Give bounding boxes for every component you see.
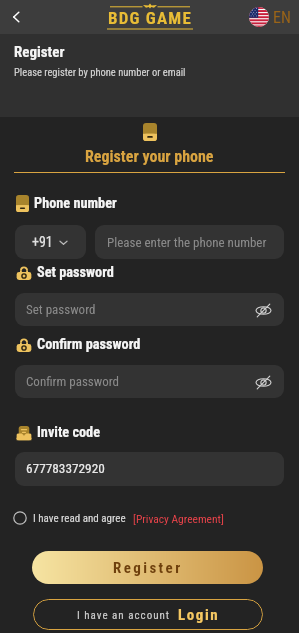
button[interactable]: I have an account (33, 599, 263, 630)
button[interactable]: I have read and agree (13, 509, 299, 527)
staticText: Confirm password (26, 374, 120, 389)
button[interactable]: +91 (15, 225, 86, 259)
button[interactable]: Show password (252, 371, 274, 393)
staticText: Register your phone (85, 147, 214, 166)
staticText: BDG GAME (108, 8, 192, 28)
staticText: 677783372920 (26, 461, 105, 477)
button[interactable]: Set password (15, 293, 284, 326)
staticText: Please enter the phone number (107, 235, 267, 250)
button[interactable]: Register (32, 551, 263, 584)
staticText: Login (178, 606, 220, 624)
staticText: Set password (37, 264, 114, 281)
staticText: EN (273, 8, 291, 27)
button[interactable]: 677783372920 (15, 452, 284, 486)
button[interactable]: Please enter the phone number (95, 225, 284, 259)
staticText: [Privacy Agreement] (133, 512, 224, 525)
staticText: Phone number (34, 195, 117, 212)
staticText: Register (113, 559, 183, 577)
button[interactable]: Confirm password (15, 365, 284, 398)
button[interactable]: Back (3, 4, 29, 30)
staticText: Set password (26, 302, 96, 317)
staticText: I have read and agree (33, 512, 126, 525)
staticText: Please register by phone number or email (14, 66, 186, 78)
staticText: I have an account (77, 609, 171, 622)
staticText: Invite code (37, 424, 101, 441)
button[interactable]: EN (249, 7, 291, 27)
staticText: +91 (32, 234, 53, 250)
staticText: Register (14, 43, 65, 61)
button[interactable]: Show password (252, 299, 274, 321)
staticText: Confirm password (37, 336, 141, 353)
